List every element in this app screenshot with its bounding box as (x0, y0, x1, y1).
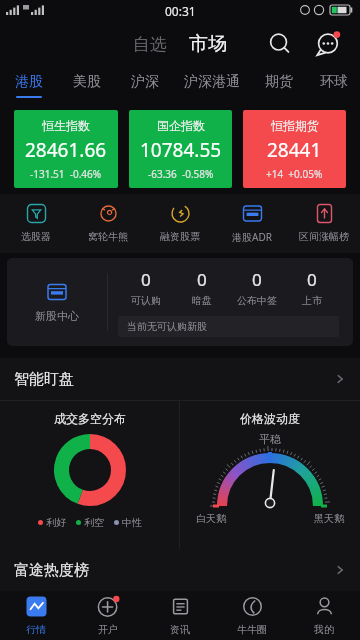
staticText: 选股器 (21, 230, 51, 243)
button[interactable]: 我的 (288, 591, 360, 640)
button[interactable]: 富途热度榜 (0, 549, 360, 591)
button[interactable]: 区间涨幅榜 (288, 203, 360, 243)
staticText: -63.36 -0.58% (148, 167, 214, 181)
button[interactable]: 新股中心 (7, 258, 353, 346)
staticText: 0 (197, 268, 207, 291)
staticText: 牛牛圈 (237, 623, 267, 636)
staticText: 暗盘 (192, 294, 212, 307)
button[interactable]: 资讯 (144, 591, 216, 640)
staticText: 10784.55 (140, 137, 222, 163)
staticText: 当前无可认购新股 (127, 320, 207, 333)
button[interactable]: 开户 (72, 591, 144, 640)
staticText: 00:31 (165, 3, 196, 19)
button[interactable]: 沪深 (116, 66, 174, 104)
button[interactable]: 港股 (0, 66, 58, 104)
staticText: 沪深港通 (184, 73, 240, 91)
staticText: 行情 (26, 623, 46, 636)
button[interactable]: 恒生指数 (14, 110, 118, 188)
button[interactable]: 窝轮牛熊 (72, 203, 144, 243)
staticText: 融资股票 (160, 230, 200, 243)
button[interactable]: 价格波动度 (180, 401, 360, 549)
button[interactable]: 沪深港通 (174, 66, 250, 104)
staticText: +14 +0.05% (266, 167, 323, 181)
staticText: 新股中心 (35, 309, 79, 323)
button[interactable]: 恒指期货 (243, 110, 346, 188)
staticText: 区间涨幅榜 (299, 230, 349, 243)
button[interactable]: 选股器 (0, 203, 72, 243)
button[interactable]: 当前无可认购新股 (118, 316, 339, 337)
staticText: 0 (252, 268, 262, 291)
staticText: 我的 (314, 623, 334, 636)
staticText: 恒生指数 (42, 118, 90, 133)
staticText: 资讯 (170, 623, 190, 636)
staticText: 28461.66 (25, 137, 107, 163)
staticText: 利空 (84, 516, 104, 529)
staticText: 开户 (98, 623, 118, 636)
staticText: 港股ADR (232, 230, 272, 244)
button[interactable]: 期货 (250, 66, 308, 104)
staticText: 可认购 (131, 294, 161, 307)
staticText: 环球 (320, 73, 348, 91)
button[interactable]: 0 (118, 268, 174, 307)
staticText: 港股 (15, 73, 43, 91)
button[interactable]: 行情 (0, 591, 72, 640)
staticText: 窝轮牛熊 (88, 230, 128, 243)
staticText: 公布中签 (237, 294, 277, 307)
button[interactable]: 智能盯盘 (0, 358, 360, 400)
button[interactable]: 成交多空分布 (0, 401, 179, 549)
staticText: 28441 (267, 137, 322, 163)
button[interactable]: 牛牛圈 (216, 591, 288, 640)
button[interactable]: 美股 (58, 66, 116, 104)
staticText: 中性 (122, 516, 142, 529)
button[interactable]: 环球 (308, 66, 360, 104)
staticText: 智能盯盘 (14, 370, 74, 389)
staticText: 0 (141, 268, 151, 291)
staticText: 期货 (265, 73, 293, 91)
staticText: 富途热度榜 (14, 561, 89, 580)
staticText: 平稳 (259, 432, 281, 446)
staticText: 市场 (189, 32, 227, 56)
staticText: 0 (307, 268, 317, 291)
button[interactable]: 0 (174, 268, 229, 307)
staticText: 恒指期货 (271, 118, 319, 133)
staticText: 白天鹅 (196, 512, 226, 525)
staticText: 国企指数 (157, 118, 205, 133)
button[interactable]: 国企指数 (129, 110, 232, 188)
button[interactable]: 0 (229, 268, 284, 307)
button[interactable]: 港股ADR (216, 203, 288, 244)
staticText: -131.51 -0.46% (30, 167, 102, 181)
staticText: 美股 (73, 73, 101, 91)
staticText: 上市 (302, 294, 322, 307)
staticText: 价格波动度 (240, 411, 300, 426)
staticText: 自选 (133, 34, 167, 55)
staticText: 沪深 (131, 73, 159, 91)
staticText: 成交多空分布 (54, 411, 126, 426)
staticText: 利好 (46, 516, 66, 529)
button[interactable]: Search (262, 26, 298, 62)
staticText: 黑天鹅 (314, 512, 344, 525)
button[interactable]: Messages (310, 25, 348, 63)
button[interactable]: 自选 (125, 30, 175, 59)
button[interactable]: 融资股票 (144, 203, 216, 243)
button[interactable]: 0 (284, 268, 339, 307)
button[interactable]: 市场 (181, 28, 235, 60)
